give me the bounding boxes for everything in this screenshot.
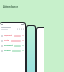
staticText: Absent: [4, 34, 13, 37]
button[interactable]: Present: [0, 43, 25, 48]
staticText: Present: [4, 44, 13, 47]
staticText: Attendance: [3, 5, 19, 9]
staticText: Late: [4, 39, 10, 42]
staticText: Leave: [4, 49, 11, 52]
button[interactable]: Leave: [0, 48, 25, 53]
button[interactable]: Absent: [0, 33, 25, 38]
button[interactable]: Late: [0, 38, 25, 43]
